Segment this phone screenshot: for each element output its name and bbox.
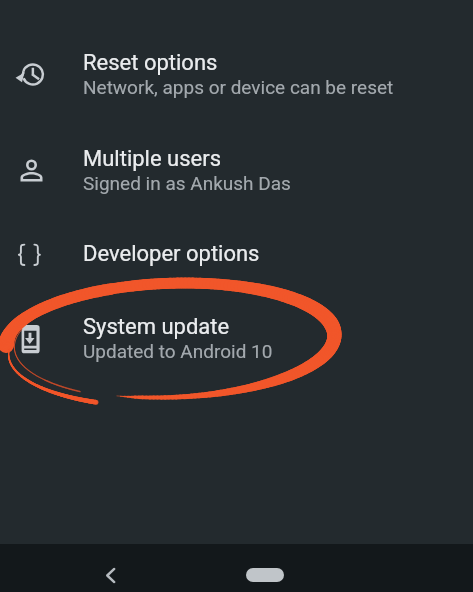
other: Reset options xyxy=(15,58,48,91)
button[interactable]: Reset options xyxy=(0,26,473,122)
button[interactable]: Home xyxy=(246,568,284,582)
other: Multiple users xyxy=(15,154,48,187)
staticText: Network, apps or device can be reset xyxy=(83,76,394,98)
other: System update xyxy=(15,322,48,355)
button[interactable]: Multiple users xyxy=(0,122,473,218)
other: Developer options xyxy=(15,238,48,271)
staticText: Reset options xyxy=(83,50,218,76)
staticText: Multiple users xyxy=(83,146,222,172)
staticText: Developer options xyxy=(83,241,260,267)
button[interactable]: Developer options xyxy=(0,218,473,290)
button[interactable]: Back xyxy=(96,561,125,590)
staticText: Signed in as Ankush Das xyxy=(83,172,291,194)
button[interactable]: System update xyxy=(0,290,473,386)
staticText: Updated to Android 10 xyxy=(83,340,273,362)
staticText: System update xyxy=(83,314,230,340)
